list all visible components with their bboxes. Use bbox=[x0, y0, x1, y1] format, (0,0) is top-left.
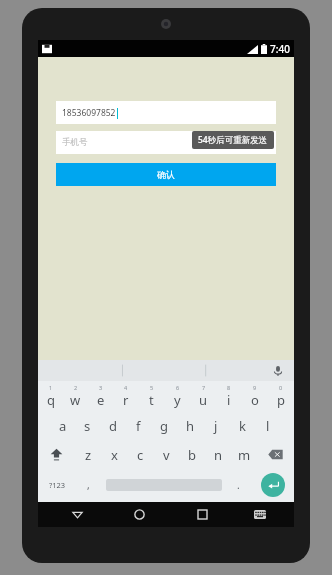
staticText: e bbox=[97, 391, 105, 409]
button[interactable]: f bbox=[125, 411, 151, 440]
button[interactable]: , bbox=[76, 469, 101, 500]
button[interactable] bbox=[101, 469, 226, 500]
staticText: 1 bbox=[49, 384, 53, 391]
staticText: p bbox=[277, 391, 285, 409]
staticText: . bbox=[237, 478, 240, 492]
button[interactable]: Backspace bbox=[257, 440, 294, 469]
button[interactable]: 7 bbox=[190, 381, 216, 411]
button[interactable]: m bbox=[231, 440, 257, 469]
staticText: x bbox=[111, 446, 118, 464]
staticText: n bbox=[214, 446, 223, 464]
staticText: 5 bbox=[150, 384, 154, 391]
button[interactable]: 1 bbox=[38, 381, 63, 411]
button[interactable]: l bbox=[255, 411, 281, 440]
button[interactable]: ?123 bbox=[38, 469, 76, 500]
staticText: 54秒后可重新发送 bbox=[198, 134, 268, 146]
staticText: 3 bbox=[99, 384, 103, 391]
staticText: t bbox=[149, 391, 154, 409]
button[interactable]: x bbox=[101, 440, 127, 469]
button[interactable]: 5 bbox=[138, 381, 164, 411]
button[interactable]: 6 bbox=[164, 381, 190, 411]
staticText: b bbox=[188, 446, 196, 464]
button[interactable]: Switch keyboard bbox=[234, 502, 286, 527]
button[interactable]: b bbox=[179, 440, 205, 469]
staticText: 4 bbox=[124, 384, 128, 391]
button[interactable]: z bbox=[75, 440, 101, 469]
staticText: g bbox=[160, 417, 168, 435]
staticText: l bbox=[266, 417, 270, 435]
button[interactable]: 18536097852 bbox=[56, 101, 276, 124]
button[interactable]: d bbox=[100, 411, 125, 440]
button[interactable]: 3 bbox=[88, 381, 113, 411]
staticText: r bbox=[123, 391, 129, 409]
staticText: k bbox=[239, 417, 246, 435]
staticText: 确认 bbox=[157, 169, 175, 180]
staticText: 6 bbox=[176, 384, 180, 391]
button[interactable]: 8 bbox=[216, 381, 242, 411]
staticText: o bbox=[251, 391, 259, 409]
staticText: m bbox=[238, 446, 251, 464]
staticText: j bbox=[214, 417, 218, 435]
staticText: i bbox=[227, 391, 231, 409]
button[interactable]: k bbox=[229, 411, 255, 440]
button[interactable]: c bbox=[127, 440, 153, 469]
staticText: 0 bbox=[279, 384, 283, 391]
staticText: 7:40 bbox=[270, 42, 290, 56]
button[interactable]: g bbox=[151, 411, 177, 440]
button[interactable]: Recent apps bbox=[171, 502, 234, 527]
staticText: y bbox=[174, 391, 181, 409]
button[interactable]: 9 bbox=[242, 381, 268, 411]
button[interactable]: Back bbox=[46, 502, 108, 527]
staticText: h bbox=[186, 417, 195, 435]
button[interactable]: Enter bbox=[261, 473, 285, 497]
staticText: 7 bbox=[202, 384, 206, 391]
staticText: a bbox=[59, 417, 67, 435]
button[interactable]: 54秒后可重新发送 bbox=[192, 131, 274, 149]
button[interactable]: Shift bbox=[38, 440, 75, 469]
button[interactable]: Voice input bbox=[271, 364, 285, 378]
staticText: v bbox=[163, 446, 170, 464]
button[interactable]: Home bbox=[108, 502, 171, 527]
button[interactable]: 手机号 bbox=[56, 131, 276, 154]
button[interactable]: 4 bbox=[113, 381, 138, 411]
staticText: z bbox=[85, 446, 92, 464]
staticText: u bbox=[199, 391, 208, 409]
button[interactable]: s bbox=[75, 411, 100, 440]
button[interactable]: n bbox=[205, 440, 231, 469]
staticText: 手机号 bbox=[62, 137, 88, 148]
staticText: , bbox=[87, 478, 90, 492]
button[interactable]: . bbox=[226, 469, 251, 500]
staticText: 8 bbox=[227, 384, 231, 391]
button[interactable]: v bbox=[153, 440, 179, 469]
staticText: 18536097852 bbox=[62, 107, 116, 119]
staticText: s bbox=[84, 417, 91, 435]
button[interactable]: 2 bbox=[63, 381, 88, 411]
staticText: 9 bbox=[253, 384, 257, 391]
staticText: w bbox=[70, 391, 81, 409]
staticText: c bbox=[137, 446, 144, 464]
staticText: 2 bbox=[74, 384, 78, 391]
staticText: f bbox=[136, 417, 141, 435]
button[interactable]: 确认 bbox=[56, 163, 276, 186]
staticText: q bbox=[47, 391, 55, 409]
button[interactable]: h bbox=[177, 411, 203, 440]
staticText: d bbox=[109, 417, 117, 435]
button[interactable]: 0 bbox=[268, 381, 294, 411]
button[interactable]: j bbox=[203, 411, 229, 440]
staticText: ?123 bbox=[49, 480, 66, 490]
button[interactable]: a bbox=[50, 411, 75, 440]
